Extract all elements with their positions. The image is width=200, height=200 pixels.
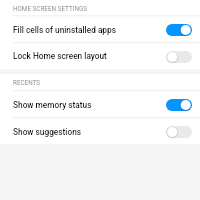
button[interactable]: Fill cells of uninstalled apps bbox=[0, 17, 200, 42]
staticText: Show memory status bbox=[13, 100, 92, 110]
staticText: Fill cells of uninstalled apps bbox=[13, 25, 116, 35]
staticText: Lock Home screen layout bbox=[13, 51, 107, 61]
staticText: RECENTS bbox=[13, 79, 41, 86]
staticText: HOME SCREEN SETTINGS bbox=[13, 5, 87, 12]
button[interactable]: Show suggestions bbox=[0, 119, 200, 144]
button[interactable]: Lock Home screen layout bbox=[0, 44, 200, 69]
button[interactable]: Show memory status bbox=[0, 92, 200, 117]
staticText: Show suggestions bbox=[13, 127, 82, 137]
